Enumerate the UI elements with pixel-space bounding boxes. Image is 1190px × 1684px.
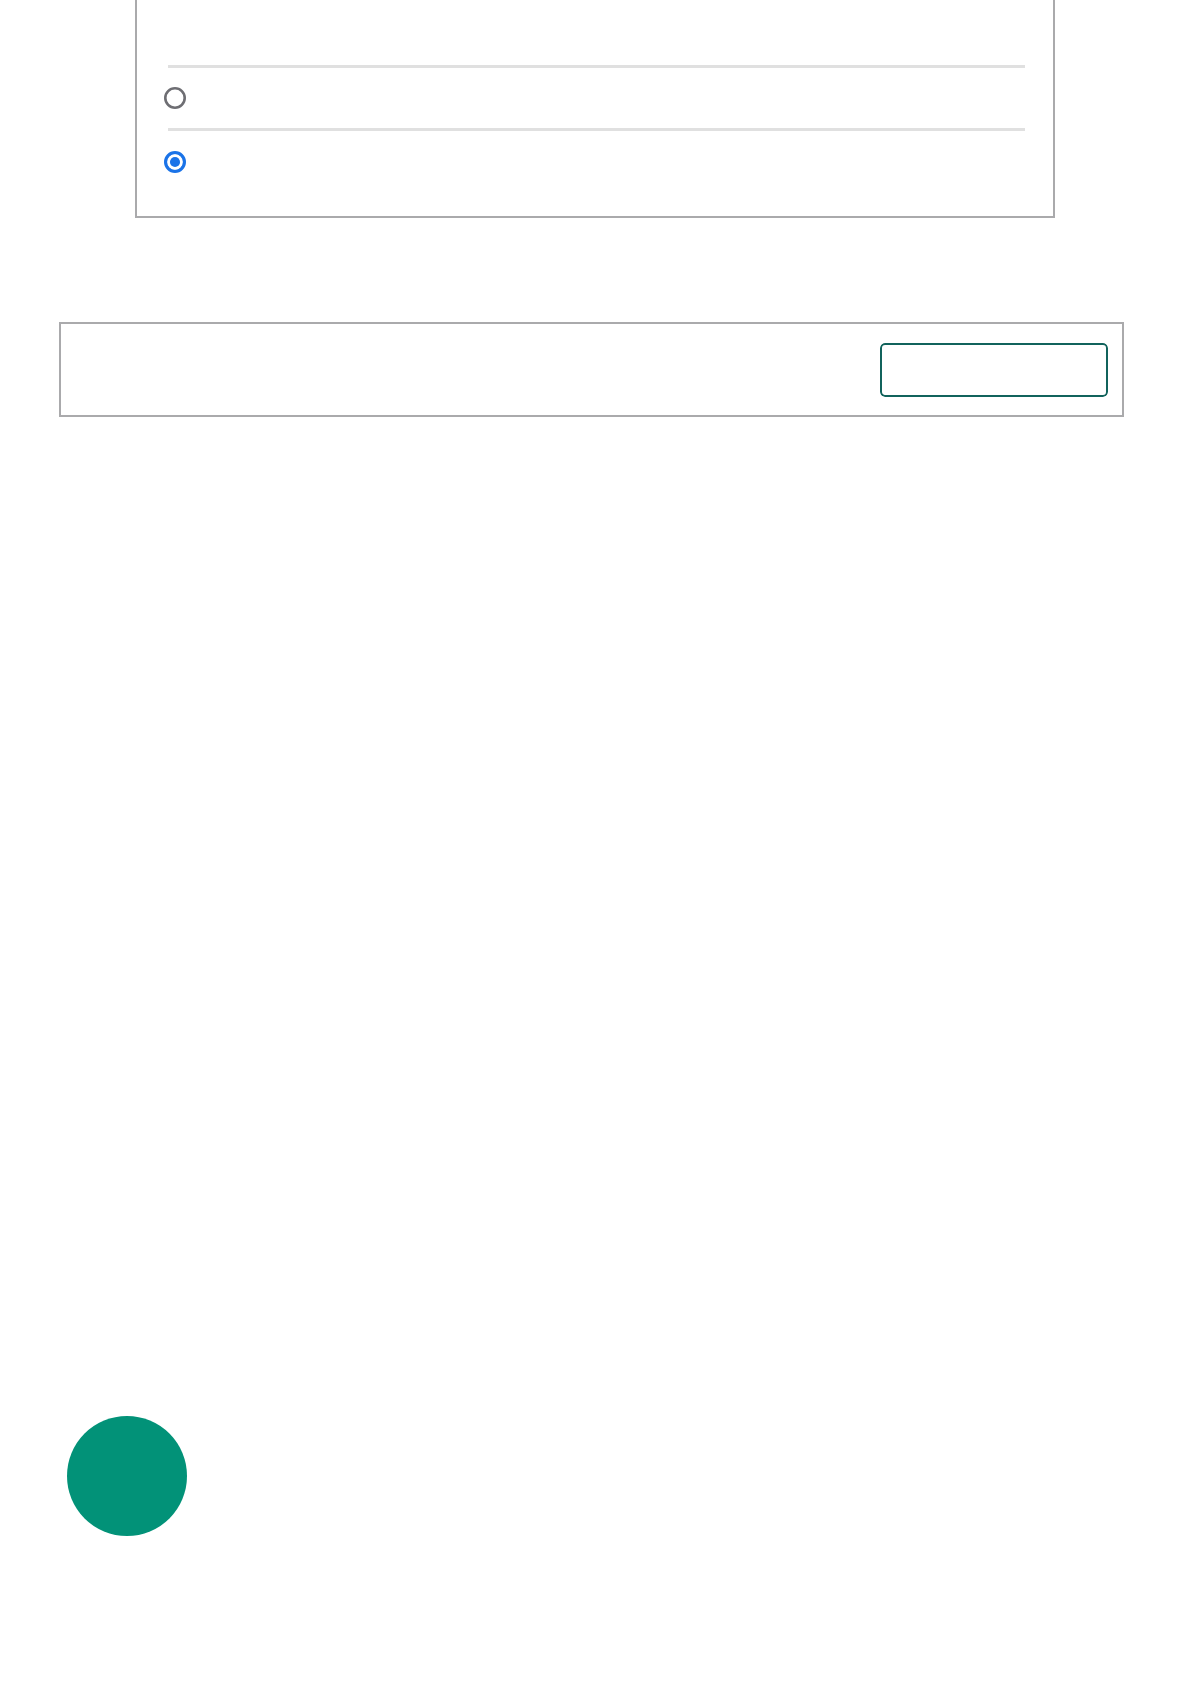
button[interactable]: Option, not selected: [153, 76, 197, 120]
button[interactable]: Add: [67, 1416, 187, 1536]
button[interactable]: Option, selected: [153, 140, 197, 184]
button[interactable]: Option, not selected: [135, 68, 1055, 128]
button[interactable]: Option, selected: [135, 131, 1055, 193]
button[interactable]: Action: [880, 343, 1108, 397]
